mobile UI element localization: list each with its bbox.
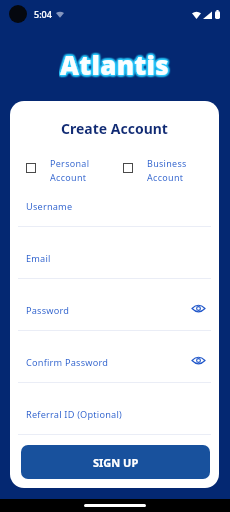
- button[interactable]: Referral ID (Optional): [18, 408, 211, 434]
- button[interactable]: Show password: [189, 351, 207, 369]
- button[interactable]: Personal Account: [10, 157, 114, 184]
- staticText: Atlantis: [60, 48, 170, 83]
- staticText: Business Account: [147, 157, 187, 184]
- staticText: Atlantis: [59, 47, 169, 82]
- staticText: Confirm Password: [26, 356, 109, 369]
- staticText: SIGN UP: [93, 455, 139, 470]
- button[interactable]: Confirm Password: [18, 356, 186, 382]
- staticText: Email: [26, 252, 51, 265]
- button[interactable]: Business Account: [114, 157, 219, 184]
- staticText: Atlantis: [61, 48, 171, 83]
- staticText: Atlantis: [61, 47, 171, 82]
- staticText: Password: [26, 304, 70, 317]
- staticText: Referral ID (Optional): [26, 408, 122, 421]
- staticText: Atlantis: [61, 46, 171, 81]
- button[interactable]: Email: [18, 252, 211, 278]
- staticText: 5:04: [34, 8, 52, 20]
- staticText: Atlantis: [59, 48, 169, 83]
- button[interactable]: Password: [18, 304, 186, 330]
- staticText: Atlantis: [60, 46, 170, 81]
- button[interactable]: SIGN UP: [21, 445, 210, 479]
- staticText: Atlantis: [60, 47, 170, 82]
- staticText: Atlantis: [60, 47, 170, 82]
- button[interactable]: Show password: [189, 299, 207, 317]
- staticText: Username: [26, 200, 73, 213]
- staticText: Create Account: [61, 119, 168, 138]
- staticText: Atlantis: [59, 46, 169, 81]
- button[interactable]: Username: [18, 200, 211, 226]
- staticText: Personal Account: [50, 157, 90, 184]
